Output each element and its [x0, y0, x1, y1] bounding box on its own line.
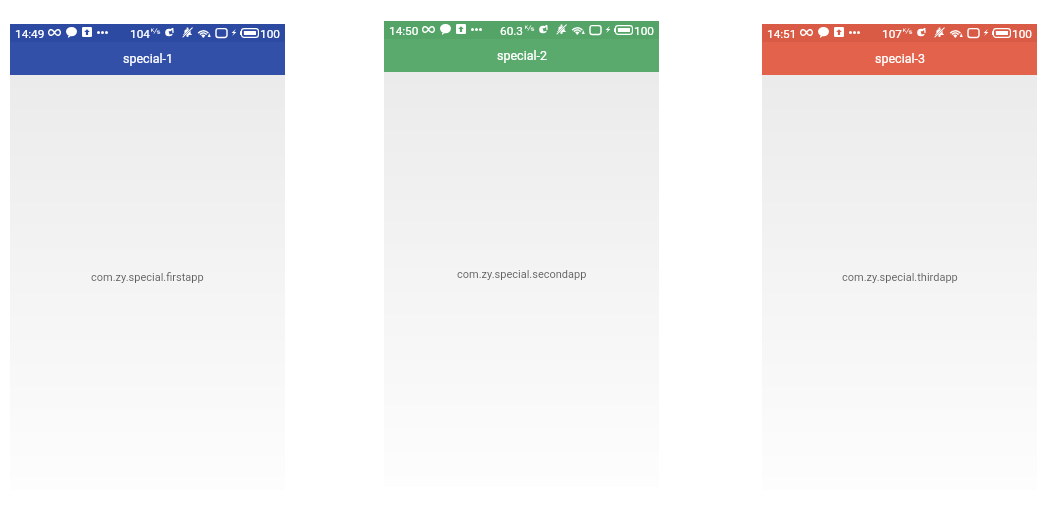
other: Unlimited data [800, 29, 813, 36]
other: Ringer muted [556, 24, 567, 35]
other: Location [165, 28, 173, 37]
other: Unlimited data [422, 26, 435, 33]
other: Kilobytes per second [525, 24, 535, 35]
other: More notifications [849, 31, 860, 34]
button[interactable]: special-3 [762, 42, 1037, 75]
other: Download manager [834, 27, 844, 37]
other: More notifications [97, 31, 108, 34]
button[interactable]: special-1 [10, 42, 285, 75]
other: Charging [231, 28, 237, 37]
other: Download manager [456, 24, 466, 34]
staticText: com.zy.special.thirdapp [842, 271, 958, 284]
staticText: special-2 [497, 48, 547, 63]
other: Auto-rotate [968, 28, 979, 38]
other: Ringer muted [934, 27, 945, 38]
other: Battery full [614, 25, 633, 35]
button[interactable]: com.zy.special.thirdapp [762, 75, 1037, 490]
staticText: com.zy.special.secondapp [457, 268, 587, 281]
other: Location [917, 28, 925, 37]
other: Wi-Fi [949, 27, 963, 38]
staticText: 104 [130, 27, 150, 41]
button[interactable]: com.zy.special.firstapp [10, 75, 285, 490]
staticText: 14:49 [15, 27, 45, 41]
other: More notifications [471, 28, 482, 31]
other: Messages [66, 27, 77, 38]
other: Kilobytes per second [903, 27, 913, 38]
other: Charging [983, 28, 989, 37]
other: Battery full [240, 28, 259, 38]
other: Download manager [82, 27, 92, 37]
staticText: 14:50 [389, 24, 419, 38]
staticText: 100 [634, 24, 654, 38]
button[interactable]: special-2 [384, 39, 659, 72]
other: Messages [818, 27, 829, 38]
staticText: 100 [260, 27, 280, 41]
staticText: special-1 [123, 51, 173, 66]
other: Battery full [992, 28, 1011, 38]
staticText: 60.3 [500, 24, 524, 38]
other: Unlimited data [48, 29, 61, 36]
staticText: 14:51 [767, 27, 797, 41]
button[interactable]: com.zy.special.secondapp [384, 72, 659, 487]
staticText: com.zy.special.firstapp [91, 271, 204, 284]
other: Kilobytes per second [151, 27, 161, 38]
other: Ringer muted [182, 27, 193, 38]
other: Wi-Fi [197, 27, 211, 38]
staticText: 100 [1012, 27, 1032, 41]
other: Wi-Fi [571, 24, 585, 35]
staticText: special-3 [875, 51, 925, 66]
other: Charging [605, 25, 611, 34]
other: Auto-rotate [216, 28, 227, 38]
staticText: 107 [882, 27, 902, 41]
other: Auto-rotate [590, 25, 601, 35]
other: Messages [440, 24, 451, 35]
other: Location [539, 25, 547, 34]
